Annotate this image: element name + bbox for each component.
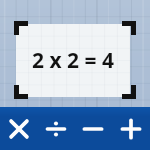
button[interactable]: Add <box>112 107 150 150</box>
staticText: 2 x 2 = 4 <box>16 46 130 75</box>
button[interactable]: Divide <box>37 107 74 150</box>
button[interactable]: Multiply <box>0 107 37 150</box>
button[interactable]: Subtract <box>74 107 112 150</box>
button[interactable]: 2 x 2 = 4 <box>16 24 130 97</box>
